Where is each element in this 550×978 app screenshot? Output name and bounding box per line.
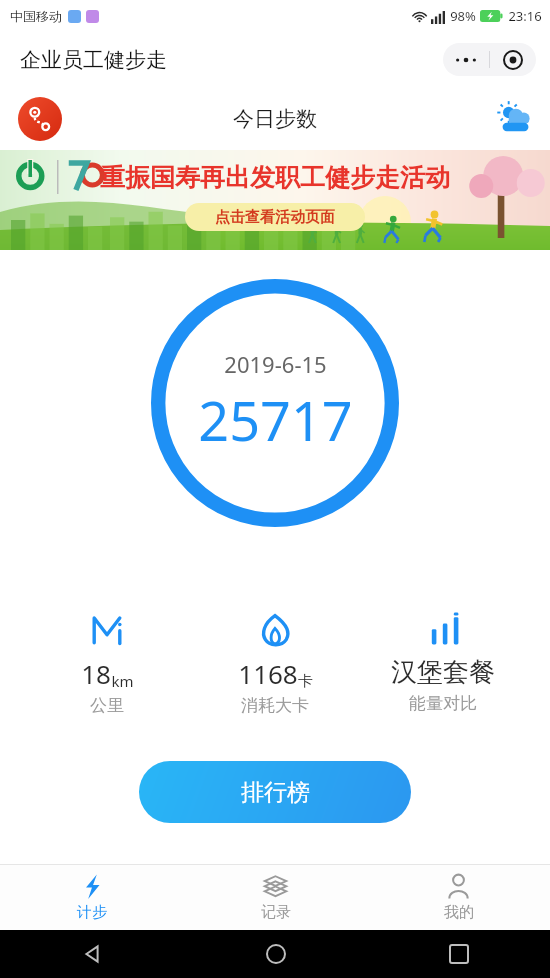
staticText: 公里 xyxy=(90,695,124,716)
staticText: 消耗大卡 xyxy=(241,695,309,716)
button[interactable]: Weather PM2.5 xyxy=(494,99,534,139)
staticText: 重振国寿再出发职工健步走活动 xyxy=(100,162,450,193)
staticText: 卡 xyxy=(298,672,313,691)
button[interactable]: 企业员工健步走 xyxy=(20,47,167,73)
staticText: 98% xyxy=(450,7,476,25)
staticText: 点击查看活动页面 xyxy=(215,208,335,227)
button[interactable]: Home xyxy=(184,930,367,978)
staticText: 计步 xyxy=(77,903,107,922)
button[interactable]: Recents xyxy=(367,930,550,978)
button[interactable]: 排行榜 xyxy=(139,761,411,823)
staticText: 记录 xyxy=(261,903,291,922)
button[interactable]: 记录 xyxy=(184,865,367,930)
staticText: 2019-6-15 xyxy=(224,349,327,379)
staticText: km xyxy=(111,671,134,691)
button[interactable]: 1168 xyxy=(200,610,350,716)
staticText: 25717 xyxy=(198,383,353,457)
staticText: 排行榜 xyxy=(241,778,310,807)
staticText: 汉堡套餐 xyxy=(391,656,495,689)
button[interactable]: Back xyxy=(0,930,184,978)
staticText: 中国移动 xyxy=(10,8,62,24)
staticText: 23:16 xyxy=(508,7,542,25)
button[interactable]: More xyxy=(443,43,489,76)
button[interactable]: 18 xyxy=(32,610,182,716)
button[interactable]: 汉堡套餐 xyxy=(368,610,518,714)
button[interactable]: 计步 xyxy=(0,865,184,930)
staticText: 我的 xyxy=(444,903,474,922)
button[interactable]: 重振国寿再出发职工健步走活动 xyxy=(0,150,550,250)
button[interactable]: 我的 xyxy=(367,865,550,930)
button[interactable]: Close xyxy=(490,43,536,76)
button[interactable]: Route xyxy=(18,97,62,141)
staticText: 18 xyxy=(81,656,111,691)
staticText: 能量对比 xyxy=(409,693,477,714)
staticText: 今日步数 xyxy=(233,106,317,132)
staticText: 企业员工健步走 xyxy=(20,47,167,73)
staticText: 1168 xyxy=(238,656,298,691)
